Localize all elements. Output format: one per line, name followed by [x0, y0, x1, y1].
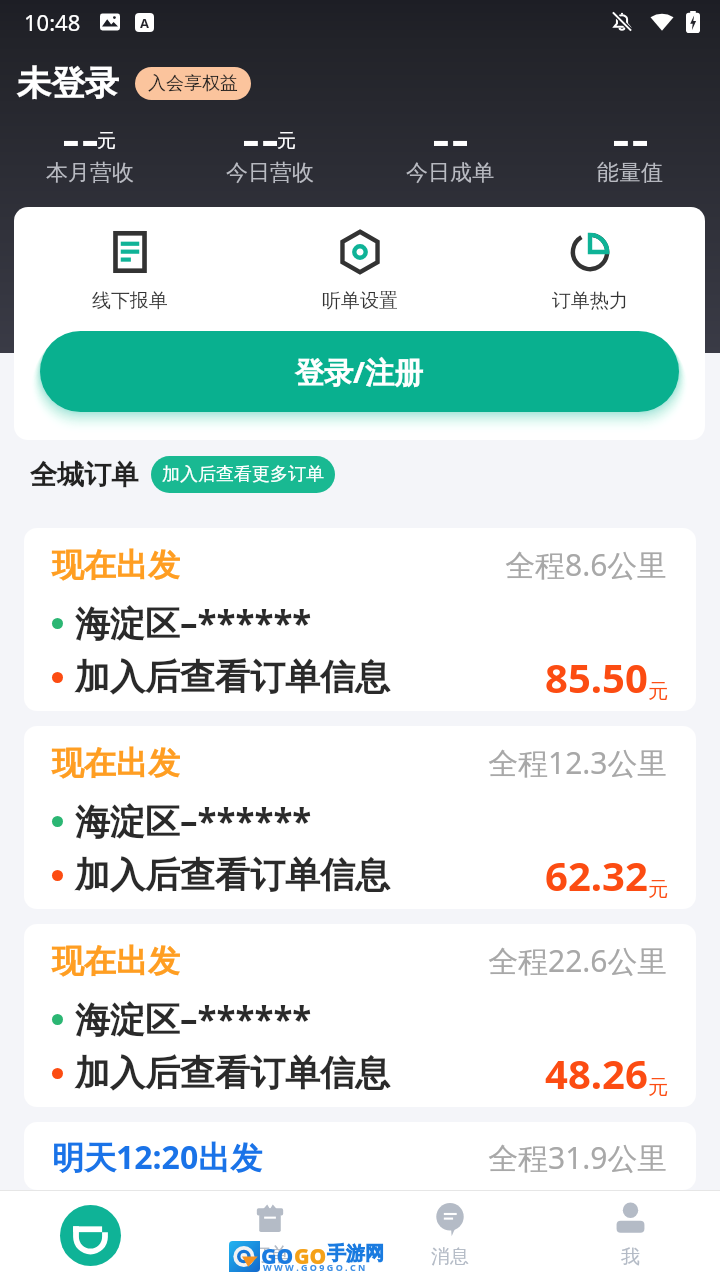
button[interactable]: 订单	[180, 1191, 360, 1280]
staticText: 加入后查看订单信息	[75, 655, 390, 699]
button[interactable]: 消息	[360, 1191, 540, 1280]
staticText: 62.32	[545, 848, 648, 902]
staticText: 元	[277, 129, 296, 153]
staticText: 入会享权益	[148, 72, 238, 95]
button[interactable]: 今日成单	[360, 118, 540, 187]
staticText: 海淀区–******	[75, 599, 312, 647]
staticText: 元	[648, 877, 668, 902]
staticText: 全程22.6公里	[488, 940, 668, 981]
button[interactable]: 明天12:20出发	[24, 1122, 696, 1190]
staticText: 今日营收	[226, 159, 314, 187]
staticText: 现在出发	[52, 743, 180, 783]
button[interactable]: 首页	[0, 1191, 180, 1280]
staticText: 全程12.3公里	[488, 742, 668, 783]
staticText: 我	[621, 1245, 640, 1269]
button[interactable]: 线下报单	[14, 230, 245, 313]
button[interactable]: 现在出发	[24, 924, 696, 1107]
staticText: 今日成单	[406, 159, 494, 187]
button[interactable]: 现在出发	[24, 726, 696, 909]
button[interactable]: 元	[180, 118, 360, 187]
staticText: 订单热力	[552, 289, 628, 313]
button[interactable]: 元	[0, 118, 180, 187]
staticText: 听单设置	[322, 289, 398, 313]
button[interactable]: 现在出发	[24, 528, 696, 711]
staticText: 本月营收	[46, 159, 134, 187]
staticText: GO	[294, 1242, 327, 1271]
staticText: 现在出发	[52, 545, 180, 585]
button[interactable]: 登录/注册	[40, 331, 679, 412]
staticText: 全程31.9公里	[488, 1137, 668, 1178]
staticText: 未登录	[17, 62, 119, 105]
staticText: W W W . G O 9 G O . C N	[263, 1261, 366, 1273]
staticText: 元	[648, 1075, 668, 1100]
button[interactable]: 订单热力	[475, 230, 705, 313]
staticText: 加入后查看订单信息	[75, 1051, 390, 1095]
staticText: 订单	[251, 1243, 289, 1267]
staticText: 85.50	[545, 650, 648, 704]
staticText: 海淀区–******	[75, 995, 312, 1043]
button[interactable]: 入会享权益	[135, 67, 251, 100]
staticText: 元	[97, 129, 116, 153]
button[interactable]: 能量值	[540, 118, 720, 187]
button[interactable]: 我	[540, 1191, 720, 1280]
staticText: 加入后查看订单信息	[75, 853, 390, 897]
staticText: 海淀区–******	[75, 797, 312, 845]
staticText: 全程8.6公里	[505, 544, 668, 585]
staticText: 登录/注册	[295, 352, 424, 392]
staticText: 手游网	[327, 1242, 384, 1266]
button[interactable]: 听单设置	[245, 230, 475, 313]
staticText: 线下报单	[92, 289, 168, 313]
staticText: 元	[648, 679, 668, 704]
staticText: 能量值	[597, 159, 663, 187]
staticText: 48.26	[545, 1046, 648, 1100]
staticText: 现在出发	[52, 941, 180, 981]
staticText: 明天12:20出发	[52, 1135, 263, 1179]
staticText: A	[140, 14, 149, 32]
button[interactable]: 加入后查看更多订单	[151, 456, 335, 493]
staticText: GO	[261, 1242, 294, 1271]
staticText: 全城订单	[30, 458, 138, 492]
staticText: 消息	[431, 1245, 469, 1269]
staticText: 10:48	[24, 7, 81, 37]
staticText: 加入后查看更多订单	[162, 463, 324, 486]
